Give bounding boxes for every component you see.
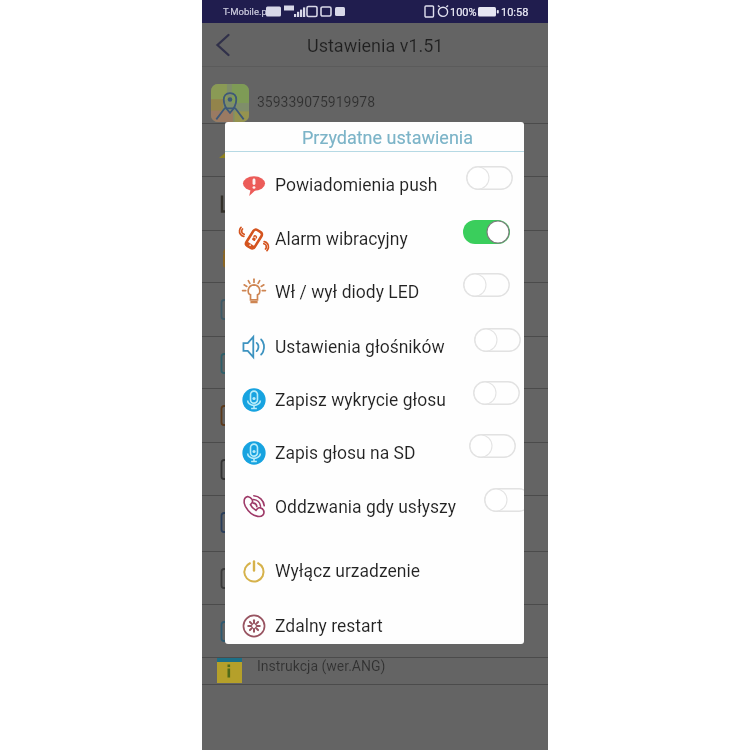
staticText: Zapis głosu na SD <box>275 443 416 464</box>
button[interactable] <box>202 552 548 604</box>
button[interactable]: On <box>463 220 510 244</box>
button[interactable] <box>202 658 548 684</box>
button[interactable]: Off <box>484 488 524 512</box>
button[interactable]: Off <box>463 273 510 297</box>
staticText: 100% <box>450 6 477 19</box>
button[interactable]: Zdalny restart <box>225 599 524 644</box>
button[interactable]: Ustawienia głośników <box>225 320 524 374</box>
button[interactable]: Off <box>469 434 516 458</box>
button[interactable]: Back <box>202 23 240 67</box>
button[interactable]: Off <box>473 381 520 405</box>
staticText: Ustawienia v1.51 <box>307 35 444 56</box>
button[interactable]: Oddzwania gdy usłyszy <box>225 480 524 534</box>
button[interactable]: Off <box>466 166 513 190</box>
button[interactable]: Wł / wył diody LED <box>225 265 524 319</box>
button[interactable]: Alarm wibracyjny <box>225 212 524 266</box>
button[interactable] <box>202 605 548 657</box>
staticText: Alarm wibracyjny <box>275 229 408 250</box>
staticText: 359339075919978 <box>257 94 376 110</box>
button[interactable] <box>202 337 548 388</box>
staticText: Wyłącz urzadzenie <box>275 561 420 582</box>
staticText: Instrukcja (wer.ANG) <box>257 658 386 674</box>
staticText: Wł / wył diody LED <box>275 282 420 303</box>
button[interactable]: Zapisz wykrycie głosu <box>225 373 524 427</box>
staticText: 10:58 <box>501 6 529 19</box>
staticText: Oddzwania gdy usłyszy <box>275 497 456 518</box>
staticText: Przydatne ustawienia <box>302 127 474 148</box>
staticText: Powiadomienia push <box>275 175 438 196</box>
button[interactable] <box>202 496 548 551</box>
button[interactable] <box>202 283 548 336</box>
staticText: Zdalny restart <box>275 616 383 637</box>
staticText: Ustawienia głośników <box>275 337 445 358</box>
button[interactable] <box>202 124 548 176</box>
button[interactable]: Zapis głosu na SD <box>225 426 524 480</box>
button[interactable]: Powiadomienia push <box>225 158 524 212</box>
button[interactable] <box>202 177 548 230</box>
staticText: Zapisz wykrycie głosu <box>275 390 446 411</box>
button[interactable] <box>202 389 548 442</box>
button[interactable]: Off <box>474 328 521 352</box>
button[interactable] <box>202 231 548 282</box>
staticText: T-Mobile.pl <box>223 6 270 17</box>
button[interactable]: Wyłącz urzadzenie <box>225 544 524 598</box>
button[interactable]: 359339075919978 <box>202 67 548 123</box>
button[interactable] <box>202 443 548 495</box>
